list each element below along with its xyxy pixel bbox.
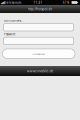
staticText: 61% — [63, 1, 69, 4]
button[interactable] — [3, 24, 74, 31]
staticText: http://hotspot.de — [27, 7, 52, 11]
staticText: Passwort: — [4, 32, 16, 36]
button[interactable]: www.t-mobile.de — [0, 66, 80, 76]
staticText: www.t-mobile.de — [26, 69, 53, 73]
staticText: Telekom.de — [6, 1, 22, 4]
button[interactable]: Anmelden — [2, 49, 75, 58]
staticText: Anmelden — [32, 52, 45, 55]
staticText: Benutzername: — [4, 19, 22, 22]
staticText: 11:41 — [33, 1, 42, 5]
button[interactable] — [3, 37, 74, 45]
